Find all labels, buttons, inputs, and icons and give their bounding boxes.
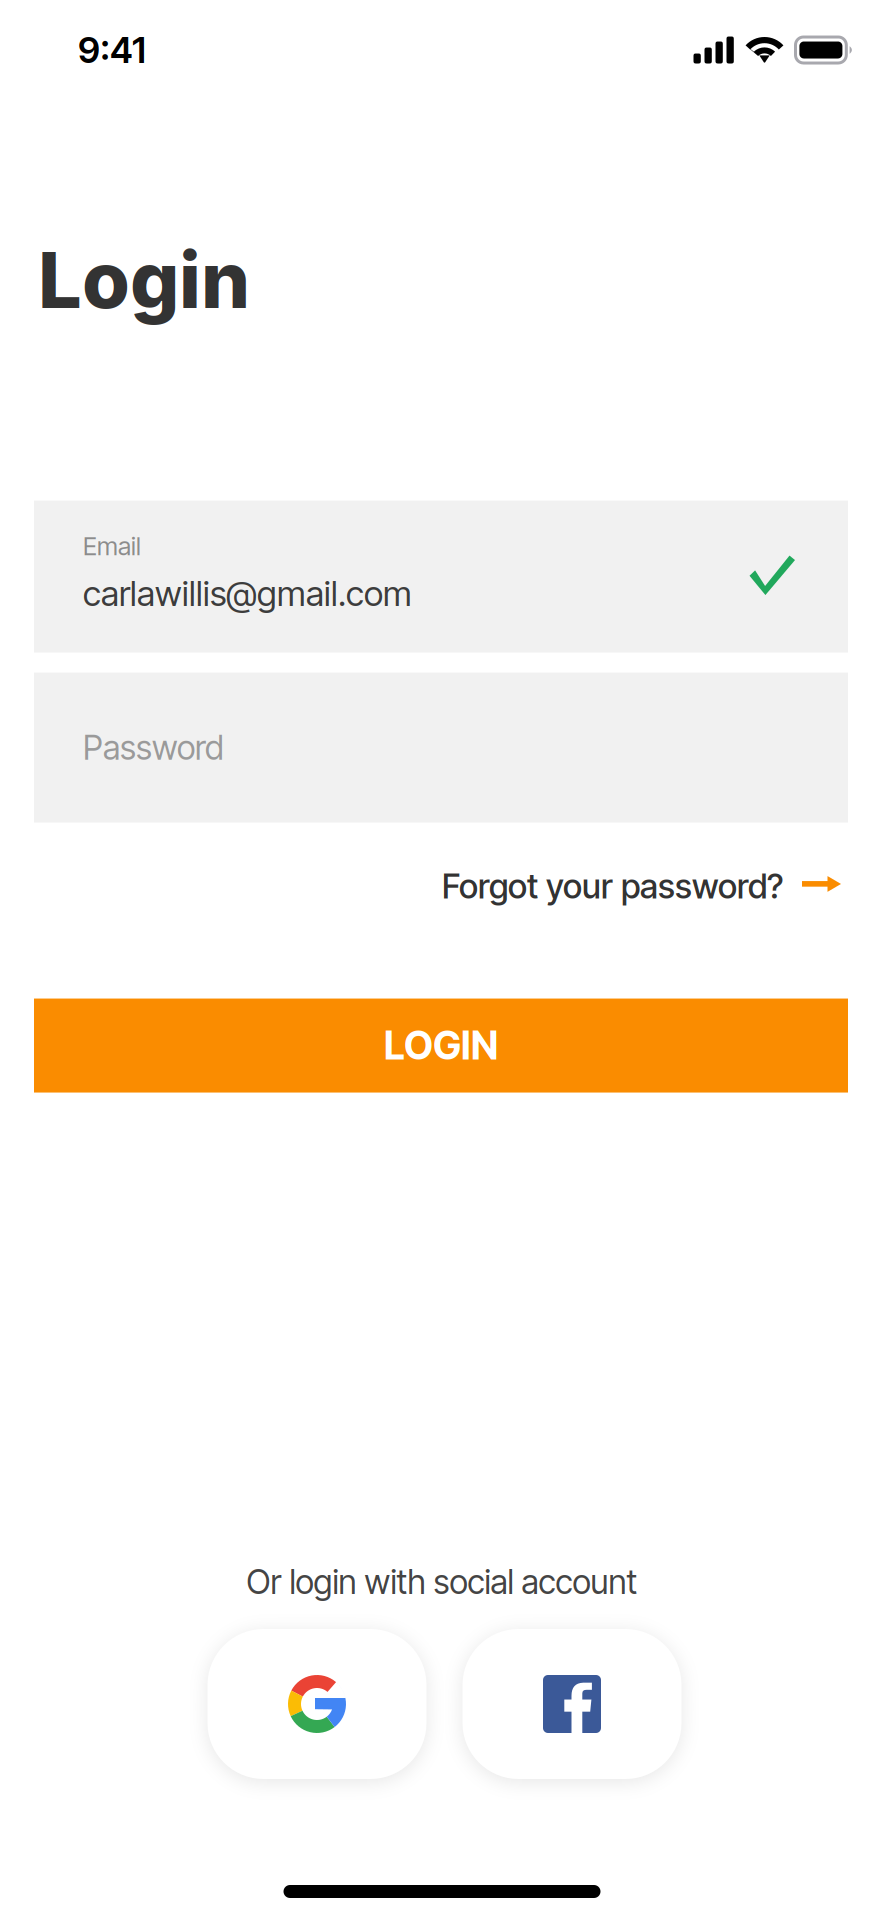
staticText: LOGIN	[384, 1022, 498, 1069]
button[interactable]: LOGIN	[34, 998, 848, 1092]
staticText: Login	[38, 233, 250, 327]
button[interactable]: Sign in with Google	[207, 1629, 426, 1779]
staticText: 9:41	[78, 28, 146, 72]
staticText: carlawillis@gmail.com	[83, 572, 412, 614]
button[interactable]: Sign in with Facebook	[462, 1629, 681, 1779]
staticText: Forgot your password?	[442, 866, 783, 907]
staticText: Password	[83, 727, 224, 768]
staticText: Or login with social account	[246, 1562, 637, 1602]
button[interactable]: Forgot your password?	[442, 860, 843, 913]
staticText: Email	[83, 531, 141, 561]
